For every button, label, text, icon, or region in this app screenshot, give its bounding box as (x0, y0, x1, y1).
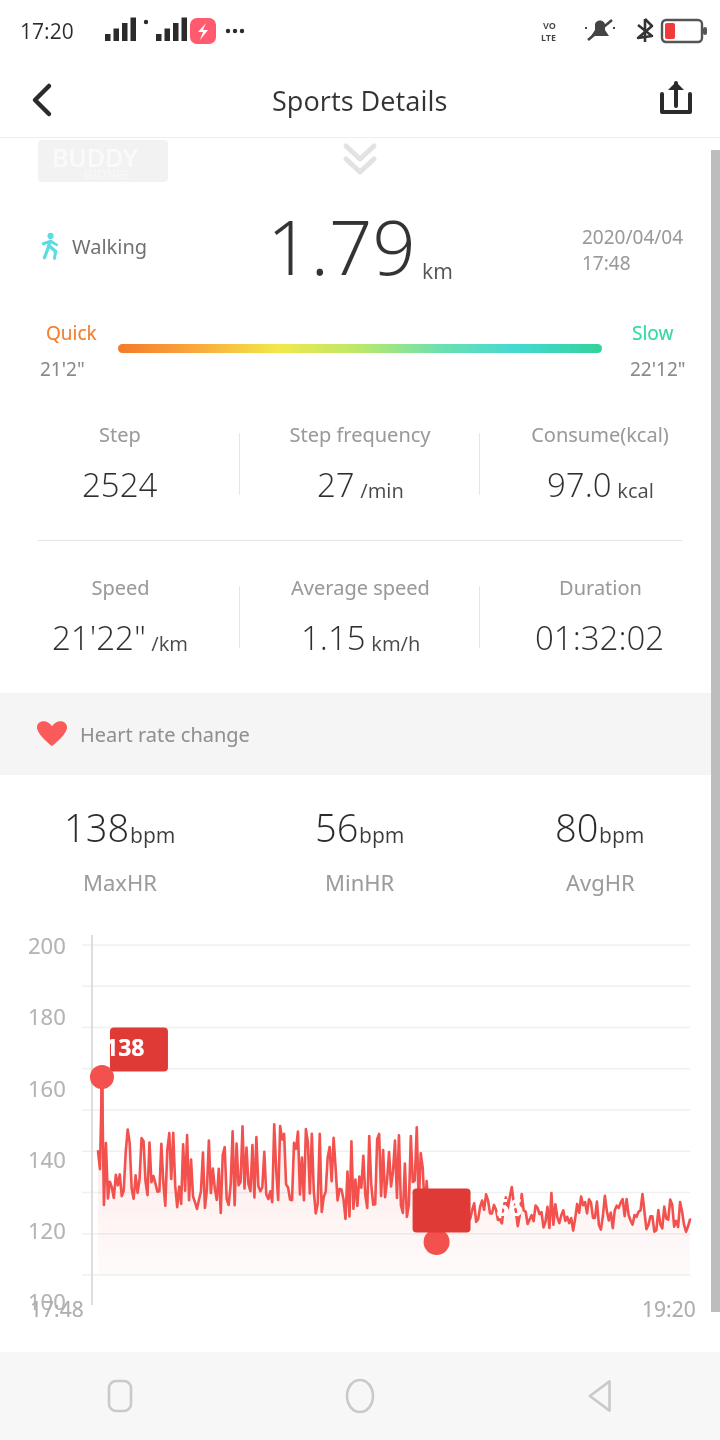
staticText: 1.15 (301, 615, 366, 660)
staticText: Step (99, 421, 141, 448)
button[interactable]: Average speed (240, 541, 480, 693)
staticText: 200 (28, 930, 66, 960)
button[interactable]: Home (240, 1352, 480, 1440)
staticText: Slow (632, 320, 674, 346)
staticText: Step frequency (289, 421, 431, 448)
staticText: 19:20 (642, 1295, 696, 1324)
button[interactable]: Back (480, 1352, 720, 1440)
button[interactable]: Duration (480, 541, 720, 693)
staticText: MaxHR (83, 867, 157, 897)
staticText: 120 (28, 1215, 66, 1245)
staticText: 100 (28, 1286, 66, 1316)
staticText: Walking (72, 233, 148, 260)
button[interactable]: Speed (0, 541, 240, 693)
staticText: 22'12" (630, 356, 686, 382)
staticText: Consume(kcal) (531, 421, 669, 448)
staticText: 140 (28, 1144, 66, 1174)
staticText: 1.79 (267, 194, 416, 298)
button[interactable]: 138 (0, 775, 240, 923)
staticText: 27 (317, 462, 355, 507)
button[interactable]: Step (0, 388, 240, 540)
staticText: Heart rate change (80, 721, 250, 748)
button[interactable]: Recent apps (0, 1352, 240, 1440)
staticText: 21'22" (52, 615, 146, 660)
staticText: 180 (28, 1001, 66, 1031)
staticText: 17:20 (20, 17, 74, 46)
button[interactable]: 56 (240, 775, 480, 923)
button[interactable]: 80 (480, 775, 720, 923)
staticText: 17:48 (30, 1295, 84, 1324)
staticText: km (422, 257, 453, 286)
staticText: 80 (555, 801, 599, 853)
button[interactable]: Step frequency (240, 388, 480, 540)
staticText: 56 (315, 801, 359, 853)
staticText: Duration (559, 574, 642, 601)
staticText: LTE (541, 31, 557, 43)
button[interactable]: Expand (332, 140, 388, 180)
staticText: VO (543, 19, 556, 31)
staticText: bpm (359, 821, 405, 850)
staticText: 2020/04/04 (582, 224, 684, 250)
staticText: /min (355, 477, 404, 504)
staticText: 21'2" (40, 356, 85, 382)
button[interactable]: Heart rate change (36, 693, 720, 775)
staticText: 56 (496, 1191, 523, 1222)
staticText: kcal (612, 477, 654, 504)
staticText: 2524 (82, 462, 158, 507)
button[interactable]: Share (644, 68, 708, 132)
staticText: Sports Details (272, 82, 448, 119)
staticText: bpm (130, 821, 176, 850)
staticText: 17:48 (582, 250, 631, 276)
button[interactable]: Back (10, 68, 74, 132)
staticText: 138 (105, 1031, 145, 1062)
staticText: /km (146, 630, 189, 657)
staticText: 97.0 (547, 462, 612, 507)
staticText: MinHR (325, 867, 395, 897)
staticText: bpm (599, 821, 645, 850)
staticText: 160 (28, 1073, 66, 1103)
staticText: BUDDY (52, 140, 138, 174)
staticText: Speed (91, 574, 150, 601)
staticText: Average speed (291, 574, 430, 601)
staticText: Quick (46, 320, 97, 346)
staticText: AvgHR (566, 867, 635, 897)
staticText: km/h (366, 630, 421, 657)
staticText: 01:32:02 (535, 615, 665, 660)
staticText: 138 (64, 801, 130, 853)
button[interactable]: Consume(kcal) (480, 388, 720, 540)
